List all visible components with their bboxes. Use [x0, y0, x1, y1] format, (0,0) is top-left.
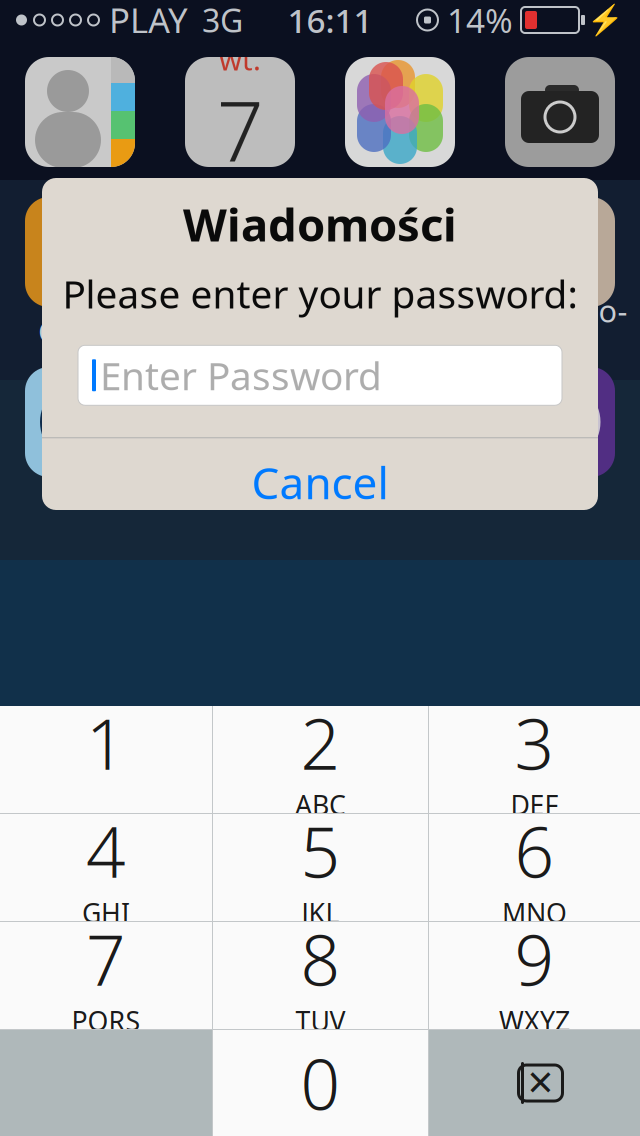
staticText: Wiadomości — [183, 194, 457, 254]
staticText: 7 — [216, 75, 263, 184]
staticText: DEF — [510, 787, 558, 822]
button[interactable]: Cancel — [42, 438, 598, 526]
staticText: 7 — [86, 913, 126, 1005]
staticText: WXYZ — [499, 1003, 570, 1038]
button[interactable]: 3 — [429, 706, 640, 813]
staticText: 5 — [300, 805, 340, 897]
staticText: TUV — [295, 1003, 345, 1038]
staticText: MNO — [502, 895, 567, 930]
staticText: 0 — [300, 1037, 340, 1129]
button[interactable]: 4 — [0, 814, 212, 921]
button[interactable]: 7 — [0, 922, 212, 1029]
button[interactable]: 9 — [429, 922, 640, 1029]
staticText: Facebook — [331, 311, 469, 351]
staticText: 8 — [300, 913, 340, 1005]
button[interactable]: 5 — [213, 814, 428, 921]
staticText: wt. — [219, 40, 261, 79]
staticText: Metronome — [492, 290, 627, 372]
staticText: Please enter your password: — [62, 268, 577, 319]
staticText: PLAY — [109, 0, 188, 43]
staticText: 16:11 — [287, 0, 372, 42]
staticText: 2 — [300, 697, 340, 789]
staticText: 6 — [514, 805, 554, 897]
staticText: JKL — [301, 895, 339, 930]
staticText: Cancel — [251, 453, 388, 511]
button[interactable]: 8 — [213, 922, 428, 1029]
staticText: 3G — [202, 0, 243, 41]
button[interactable]: 2 — [213, 706, 428, 813]
staticText: GHI — [82, 895, 130, 930]
button[interactable]: 1 — [0, 706, 212, 813]
button[interactable]: 0 — [213, 1030, 428, 1136]
staticText: 1 — [86, 697, 126, 789]
staticText: 3 — [514, 697, 554, 789]
staticText: 14% — [447, 0, 513, 42]
staticText: Gmail — [38, 311, 122, 351]
button[interactable]: 6 — [429, 814, 640, 921]
staticText: PQRS — [71, 1003, 140, 1038]
button[interactable]: Delete — [429, 1030, 640, 1136]
staticText: ABC — [295, 787, 346, 822]
staticText: × — [527, 1051, 553, 1111]
staticText: 9 — [514, 913, 554, 1005]
staticText: Enter Password — [100, 350, 382, 401]
staticText: 4 — [86, 805, 126, 897]
staticText: 24 — [533, 390, 587, 454]
staticText: mBank PL — [168, 311, 312, 351]
staticText: ⚡ — [587, 3, 624, 37]
staticText: S — [62, 379, 97, 464]
